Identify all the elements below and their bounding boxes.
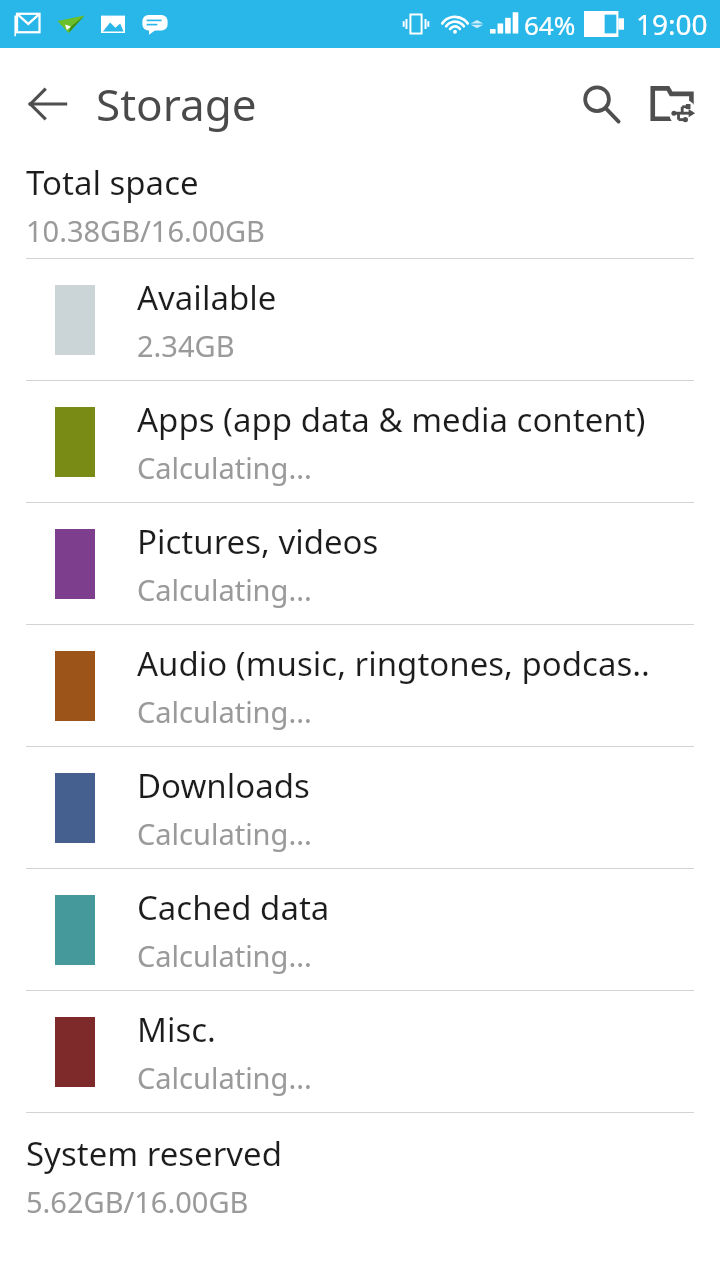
button[interactable]: Available — [0, 259, 720, 380]
button[interactable]: Back — [16, 72, 80, 136]
staticText: 2.34GB — [137, 326, 235, 365]
staticText: Cached data — [137, 885, 330, 930]
staticText: Apps (app data & media content) — [137, 397, 646, 442]
button[interactable]: Apps (app data & media content) — [0, 381, 720, 502]
button[interactable]: Audio (music, ringtones, podcas.. — [0, 625, 720, 746]
button[interactable]: Pictures, videos — [0, 503, 720, 624]
staticText: 10.38GB/16.00GB — [26, 211, 265, 250]
button[interactable]: Cached data — [0, 869, 720, 990]
staticText: Total space — [26, 160, 199, 205]
staticText: Downloads — [137, 763, 310, 808]
staticText: Calculating... — [137, 814, 312, 853]
button[interactable]: Search — [566, 69, 636, 139]
staticText: Calculating... — [137, 936, 312, 975]
staticText: Misc. — [137, 1007, 216, 1052]
staticText: 19:00 — [636, 5, 708, 43]
staticText: Pictures, videos — [137, 519, 379, 564]
staticText: Calculating... — [137, 448, 312, 487]
staticText: System reserved — [26, 1131, 283, 1176]
staticText: Calculating... — [137, 570, 312, 609]
staticText: Calculating... — [137, 1058, 312, 1097]
button[interactable]: Misc. — [0, 991, 720, 1112]
staticText: Storage — [96, 74, 257, 134]
button[interactable]: Downloads — [0, 747, 720, 868]
staticText: 5.62GB/16.00GB — [26, 1182, 249, 1221]
staticText: Available — [137, 275, 277, 320]
staticText: Calculating... — [137, 692, 312, 731]
staticText: Audio (music, ringtones, podcas.. — [137, 641, 650, 686]
button[interactable]: USB storage — [636, 67, 710, 141]
staticText: 64% — [524, 7, 576, 42]
